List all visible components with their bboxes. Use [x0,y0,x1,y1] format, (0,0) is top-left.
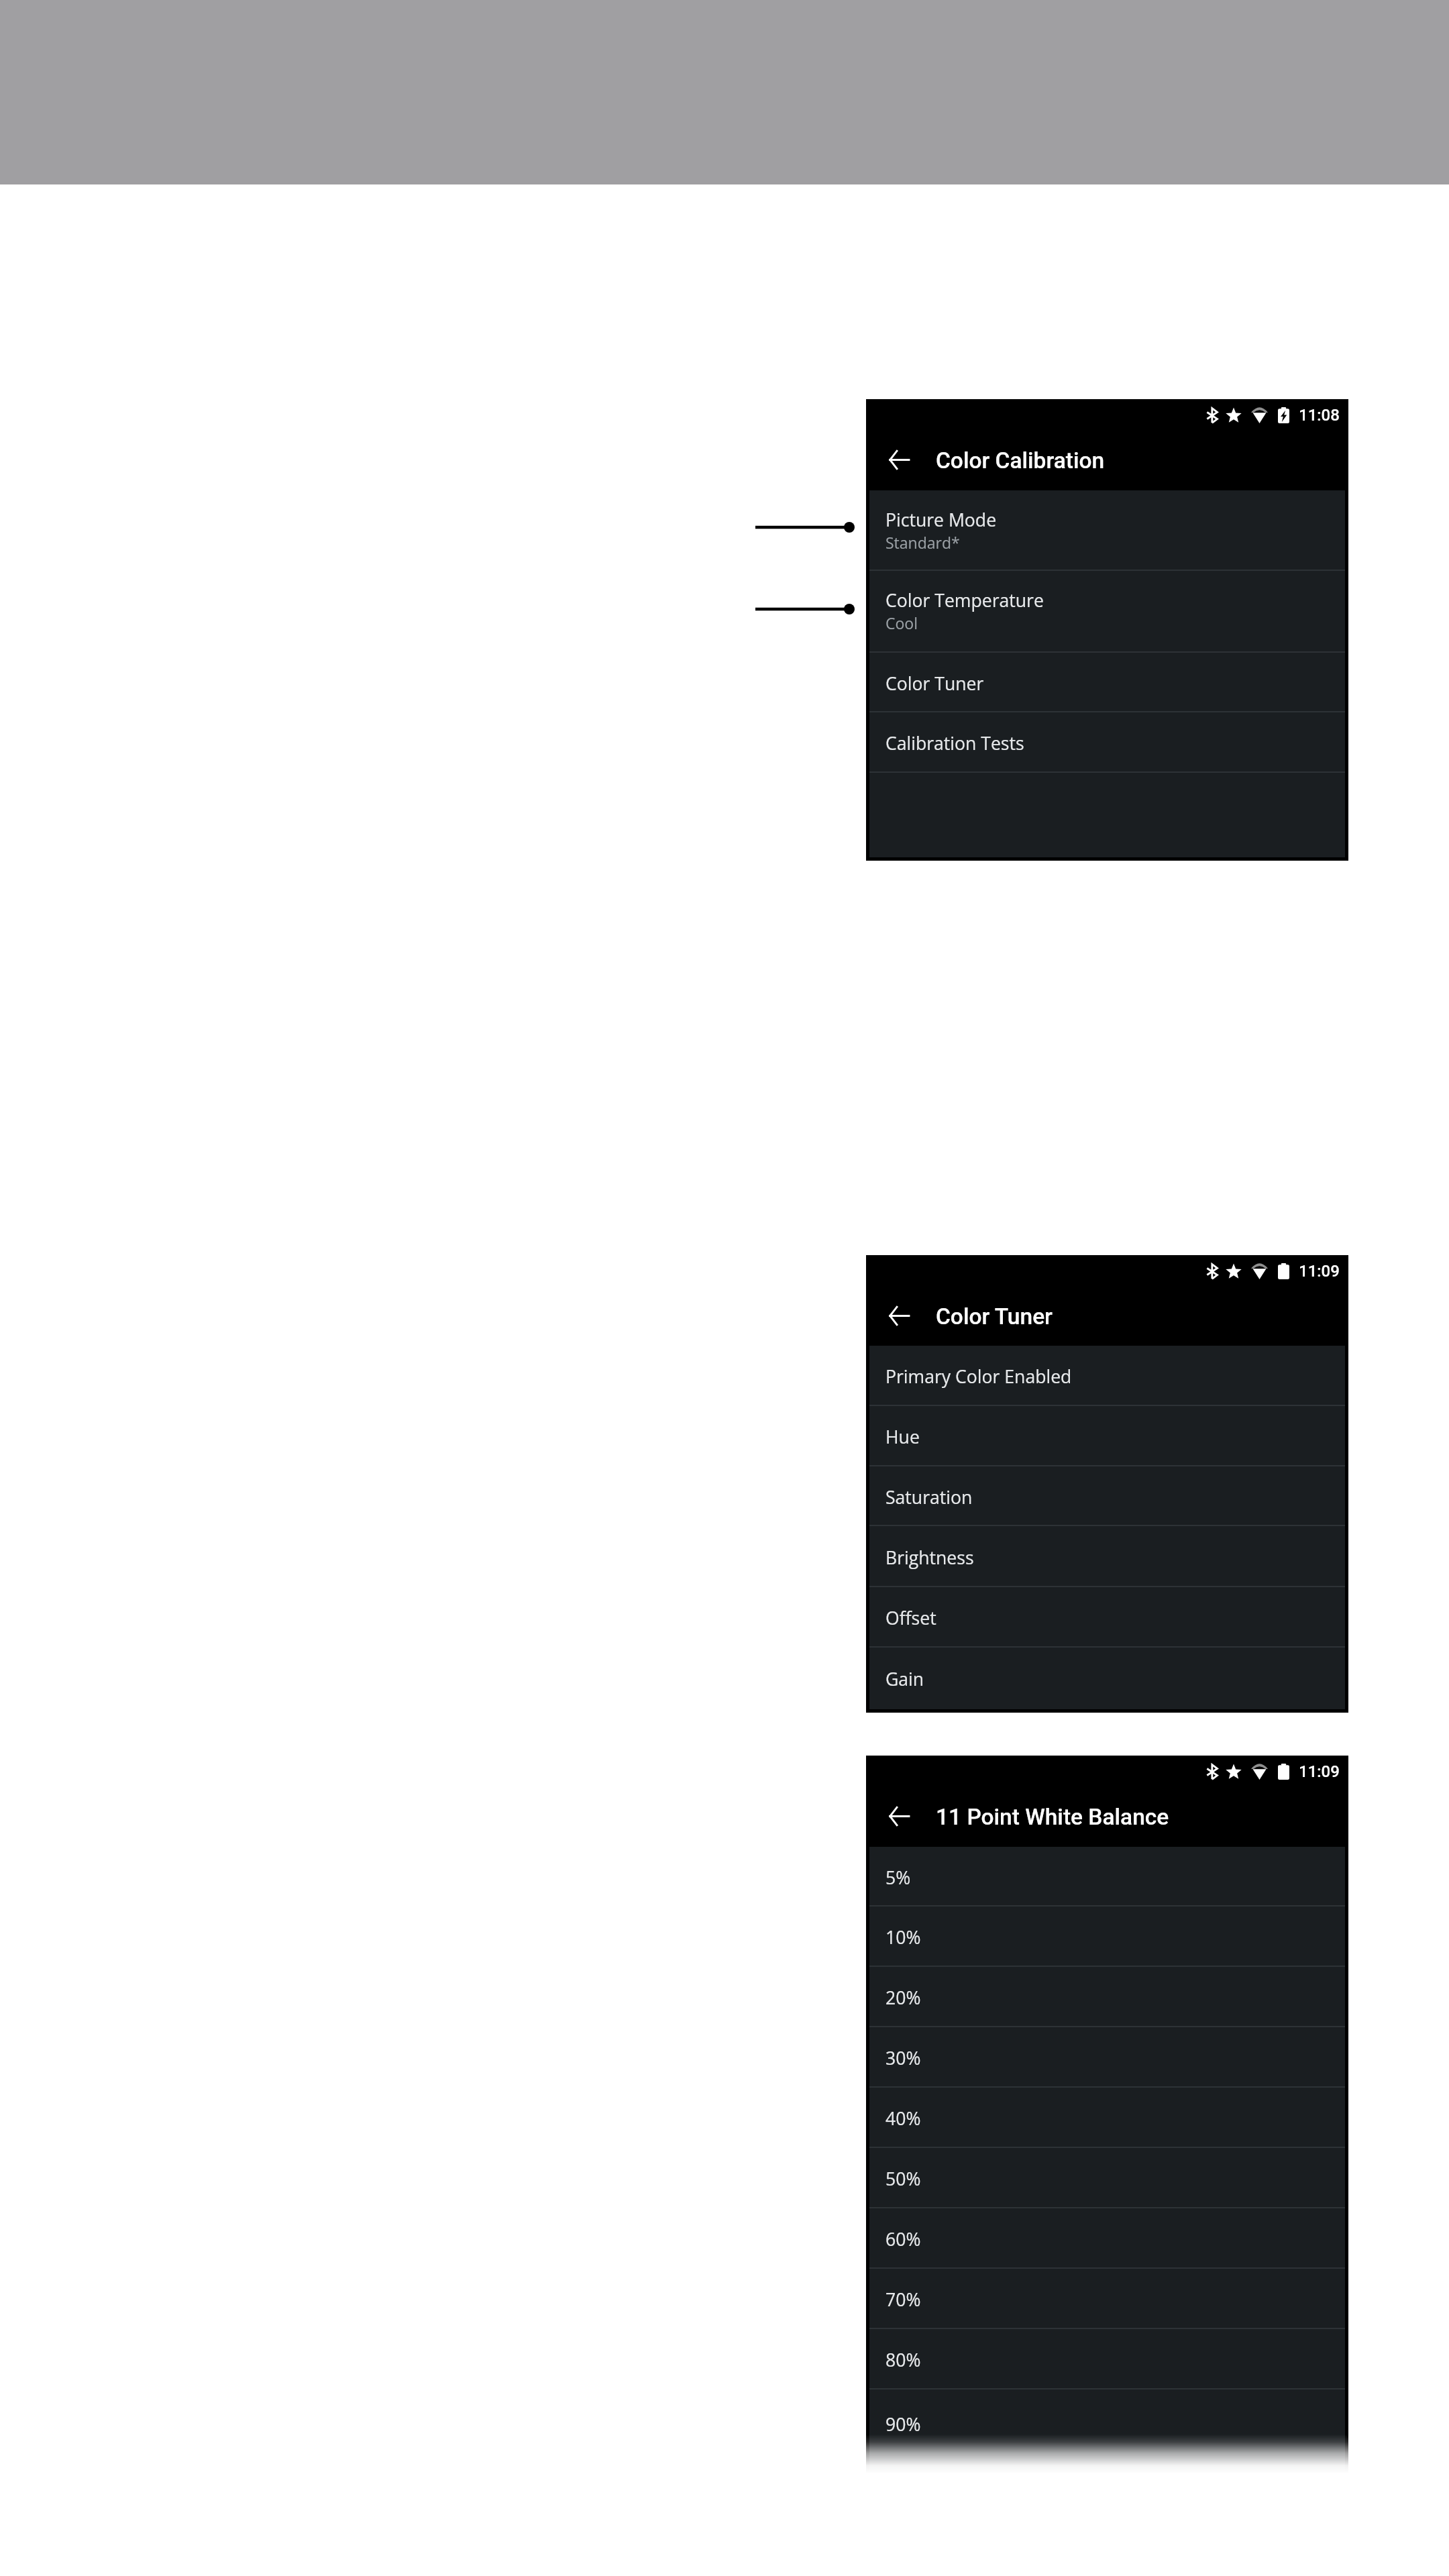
staticText: 10% [885,1925,921,1949]
staticText: Color Calibration [936,447,1105,474]
button[interactable]: Back [869,1786,928,1847]
staticText: 11:09 [1299,1262,1340,1281]
button[interactable]: 50% [869,2148,1345,2208]
staticText: Calibration Tests [885,731,1024,755]
button[interactable]: Back [869,429,928,490]
staticText: Color Tuner [885,672,984,696]
button[interactable]: Picture Mode [869,490,1345,571]
staticText: 80% [885,2348,921,2372]
staticText: 90% [885,2412,921,2436]
staticText: 70% [885,2288,921,2312]
button[interactable]: Calibration Tests [869,712,1345,773]
staticText: Offset [885,1606,936,1630]
staticText: 11:08 [1299,406,1340,425]
button[interactable]: Color Temperature [869,571,1345,653]
staticText: Hue [885,1425,920,1449]
button[interactable]: 80% [869,2329,1345,2390]
staticText: 30% [885,2046,921,2070]
button[interactable]: 20% [869,1967,1345,2027]
staticText: Gain [885,1667,924,1691]
staticText: Primary Color Enabled [885,1364,1072,1389]
staticText: 11:09 [1299,1762,1340,1781]
staticText: 11 Point White Balance [936,1804,1169,1830]
button[interactable]: Color Tuner [869,653,1345,712]
staticText: Standard* [885,532,960,553]
button[interactable]: Primary Color Enabled [869,1346,1345,1406]
staticText: 60% [885,2227,921,2251]
staticText: Picture Mode [885,508,997,532]
button[interactable]: Gain [869,1648,1345,1709]
button[interactable]: 5% [869,1847,1345,1907]
button[interactable]: Saturation [869,1466,1345,1526]
button[interactable]: 70% [869,2269,1345,2329]
button[interactable]: Hue [869,1406,1345,1466]
button[interactable]: Back [869,1285,928,1346]
button[interactable]: 30% [869,2027,1345,2088]
button[interactable]: Brightness [869,1526,1345,1587]
button[interactable]: Offset [869,1587,1345,1648]
staticText: 20% [885,1986,921,2010]
staticText: Saturation [885,1485,973,1509]
staticText: 50% [885,2167,921,2191]
button[interactable]: 10% [869,1907,1345,1967]
button[interactable]: 40% [869,2088,1345,2148]
staticText: 40% [885,2106,921,2131]
staticText: Color Tuner [936,1303,1053,1330]
staticText: 5% [885,1866,911,1890]
button[interactable]: 60% [869,2208,1345,2269]
button[interactable]: 90% [869,2390,1345,2458]
staticText: Color Temperature [885,588,1044,612]
staticText: Cool [885,612,918,633]
staticText: Brightness [885,1546,974,1570]
